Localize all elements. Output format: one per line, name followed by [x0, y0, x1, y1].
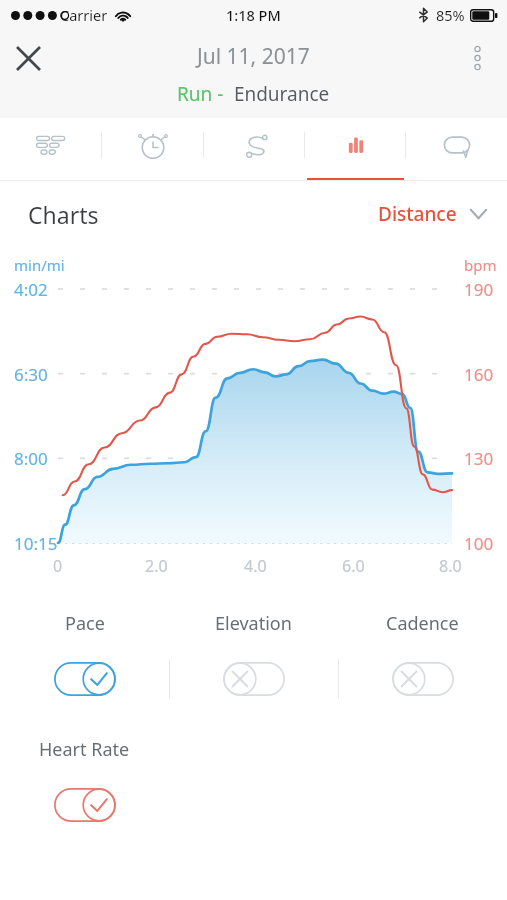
button[interactable]: Cadence	[338, 597, 507, 705]
button[interactable]: Pace	[0, 597, 169, 705]
staticText: Distance	[378, 201, 457, 227]
staticText: bpm	[464, 255, 497, 275]
button[interactable]: More options	[453, 34, 501, 82]
staticText: 10:15	[14, 532, 58, 555]
staticText: 6:30	[14, 363, 48, 386]
staticText: 6.0	[342, 555, 365, 577]
button[interactable]: Elevation	[169, 597, 338, 705]
button[interactable]: Close	[4, 34, 52, 82]
staticText: Carrier	[60, 5, 108, 25]
staticText: Endurance	[224, 81, 330, 107]
staticText: 190	[464, 278, 494, 301]
button[interactable]: Map	[204, 118, 305, 180]
staticText: Heart Rate	[39, 737, 130, 762]
staticText: 130	[464, 447, 494, 470]
staticText: 4:02	[14, 278, 48, 301]
button[interactable]: Distance	[378, 201, 487, 227]
staticText: Run -	[177, 81, 224, 107]
button[interactable]: Summary	[0, 118, 102, 180]
staticText: Elevation	[215, 611, 292, 636]
button[interactable]: Laps	[102, 118, 204, 180]
staticText: 8.0	[439, 555, 462, 577]
staticText: 8:00	[14, 447, 48, 470]
button[interactable]: Charts	[305, 118, 406, 180]
button[interactable]: Heart Rate	[0, 723, 169, 831]
staticText: 160	[464, 363, 494, 386]
staticText: 100	[464, 532, 494, 555]
staticText: 0	[53, 555, 63, 577]
staticText: 85%	[436, 5, 465, 25]
staticText: Cadence	[386, 611, 459, 636]
staticText: Charts	[28, 199, 99, 230]
staticText: 1:18 PM	[226, 5, 281, 25]
staticText: 4.0	[244, 555, 267, 577]
staticText: 2.0	[145, 555, 168, 577]
staticText: Jul 11, 2017	[197, 42, 310, 71]
staticText: min/mi	[14, 255, 65, 275]
staticText: Pace	[65, 611, 105, 636]
button[interactable]: Comments	[406, 118, 507, 180]
